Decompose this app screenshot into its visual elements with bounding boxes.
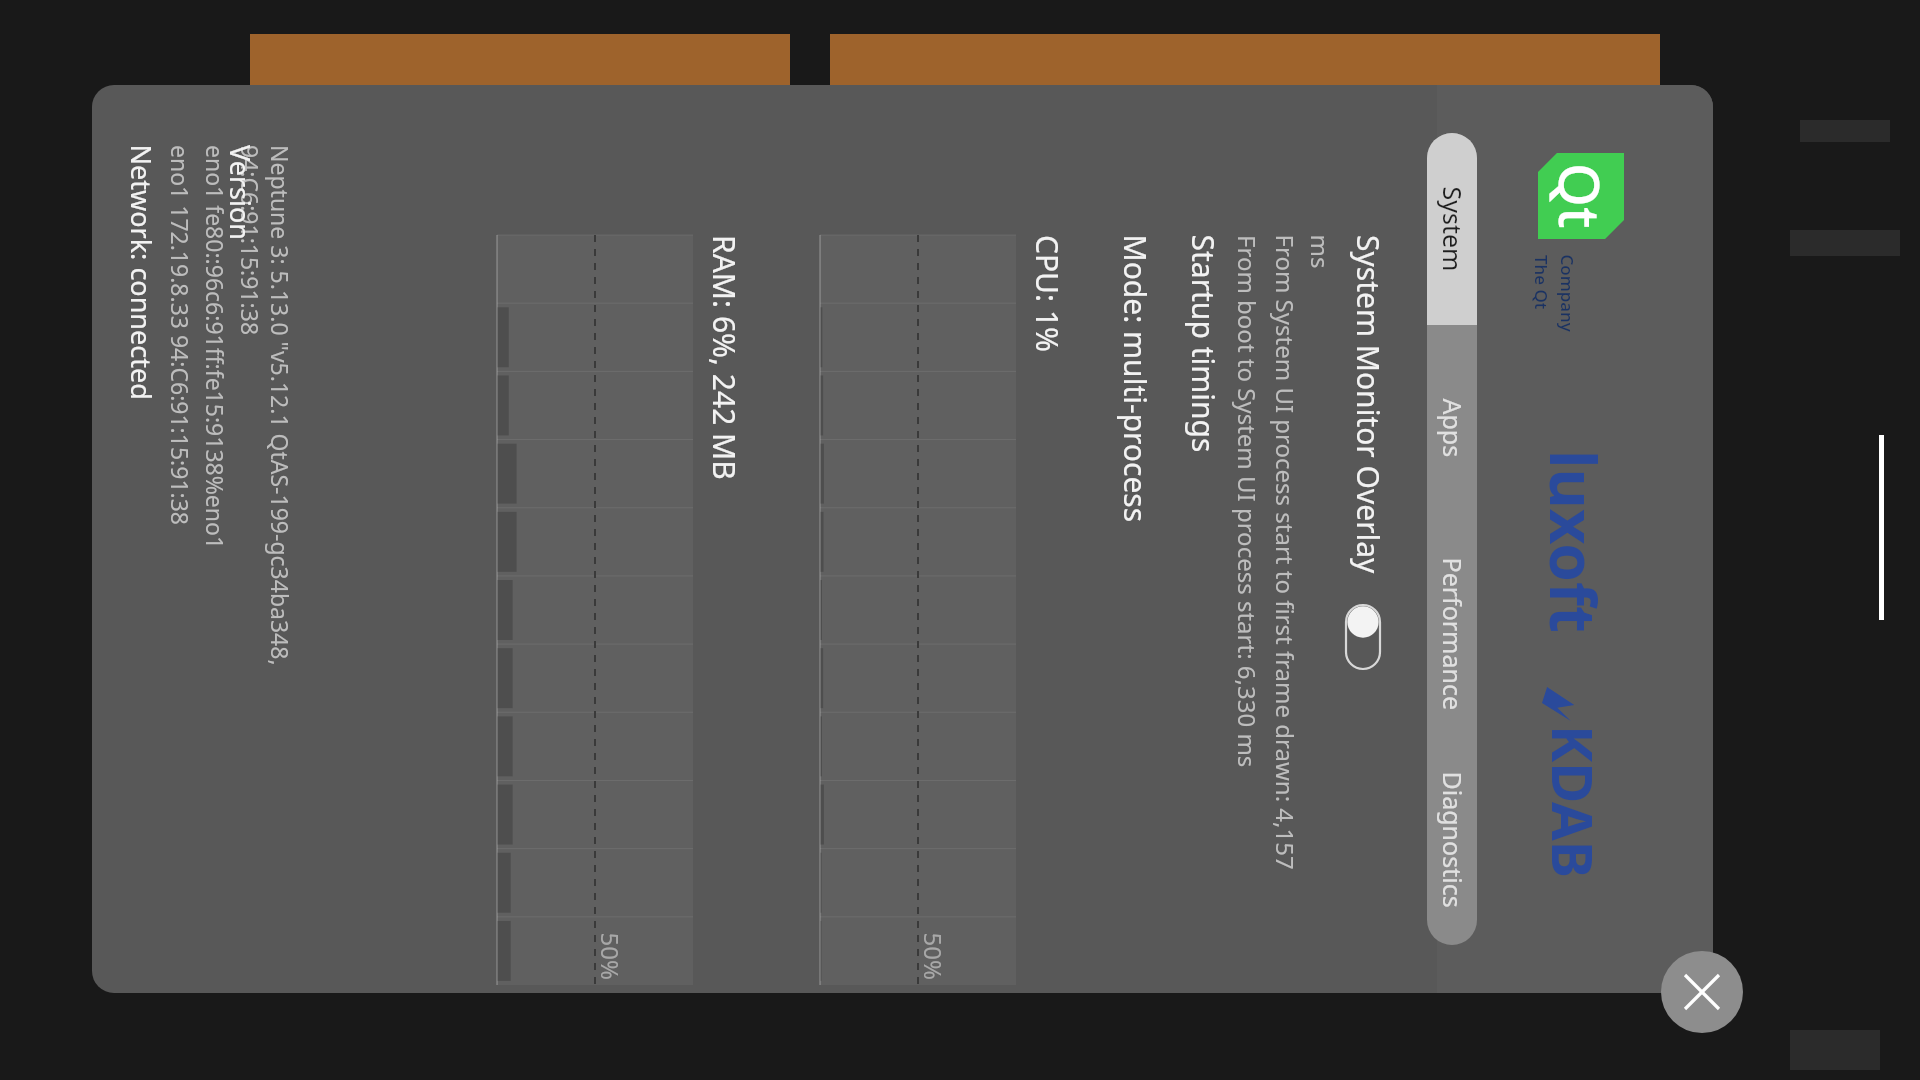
staticText: RAM: 6%, 242 MB xyxy=(704,235,745,480)
staticText: Qt xyxy=(1543,163,1619,229)
staticText: From System UI process start to first fr… xyxy=(1268,234,1301,870)
staticText: From boot to System UI process start: 6,… xyxy=(1231,235,1264,768)
staticText: Startup timings xyxy=(1182,234,1223,452)
staticText: eno1 172.19.8.33 94:C6:91:15:91:38 xyxy=(165,145,196,526)
staticText: System Monitor Overlay xyxy=(1348,235,1389,574)
button[interactable]: Diagnostics xyxy=(1427,737,1477,943)
staticText: ms xyxy=(1303,234,1336,268)
staticText: 94:C6:91:15:91:38 xyxy=(235,145,266,336)
staticText: eno1 fe80::96c6:91ff:fe15:9138%eno1 xyxy=(200,145,231,550)
staticText: Performance xyxy=(1435,557,1469,710)
staticText: Network: connected xyxy=(122,144,159,400)
staticText: 50% xyxy=(916,932,949,980)
staticText: CPU: 1% xyxy=(1027,235,1068,352)
staticText: KDAB xyxy=(1536,725,1612,879)
staticText: System xyxy=(1435,186,1469,271)
staticText: Apps xyxy=(1435,398,1469,457)
staticText: Version xyxy=(222,145,259,240)
staticText: Company xyxy=(1555,254,1578,332)
button[interactable]: Close xyxy=(1661,951,1743,1033)
staticText: 50% xyxy=(593,932,626,980)
staticText: Neptune 3: 5.13.0 "v5.12.1 QtAS-199-gc34… xyxy=(265,145,296,666)
staticText: Diagnostics xyxy=(1435,771,1469,908)
button[interactable]: Performance xyxy=(1427,531,1477,737)
staticText: luxoft xyxy=(1532,450,1616,634)
button[interactable]: Apps xyxy=(1427,325,1477,531)
button[interactable]: System Monitor Overlay toggle xyxy=(1346,605,1380,669)
staticText: The Qt xyxy=(1530,255,1553,310)
staticText: Mode: multi-process xyxy=(1114,234,1155,522)
button[interactable]: System xyxy=(1427,133,1477,325)
